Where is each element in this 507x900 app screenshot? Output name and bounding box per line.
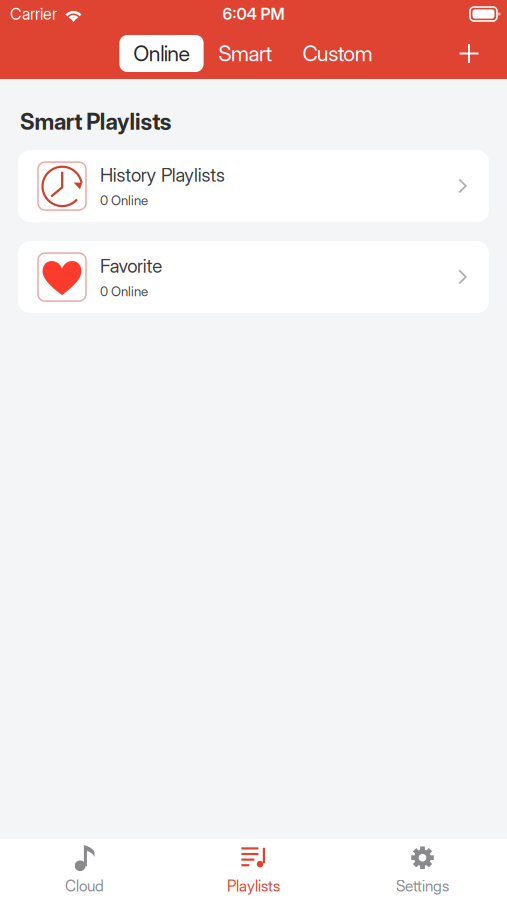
staticText: History Playlists	[100, 164, 225, 186]
staticText: Carrier	[10, 4, 57, 24]
button[interactable]: Cloud	[0, 839, 169, 900]
staticText: 0 Online	[100, 192, 148, 208]
button[interactable]: History Playlists	[18, 150, 489, 222]
button[interactable]: Smart	[204, 35, 287, 72]
staticText: 0 Online	[100, 283, 148, 299]
staticText: Cloud	[65, 877, 104, 895]
button[interactable]: Custom	[287, 35, 388, 72]
button[interactable]: Online	[119, 35, 204, 72]
button[interactable]: Favorite	[18, 241, 489, 313]
staticText: 6:04 PM	[222, 4, 284, 24]
staticText: Favorite	[100, 255, 162, 277]
staticText: Smart	[219, 41, 272, 66]
button[interactable]: Add playlist	[450, 34, 488, 72]
staticText: Settings	[396, 877, 449, 895]
button[interactable]: Settings	[338, 839, 507, 900]
button[interactable]: Playlists	[169, 839, 338, 900]
staticText: Playlists	[227, 877, 280, 895]
staticText: Online	[133, 41, 190, 66]
staticText: Custom	[302, 41, 373, 66]
staticText: Smart Playlists	[20, 108, 172, 135]
